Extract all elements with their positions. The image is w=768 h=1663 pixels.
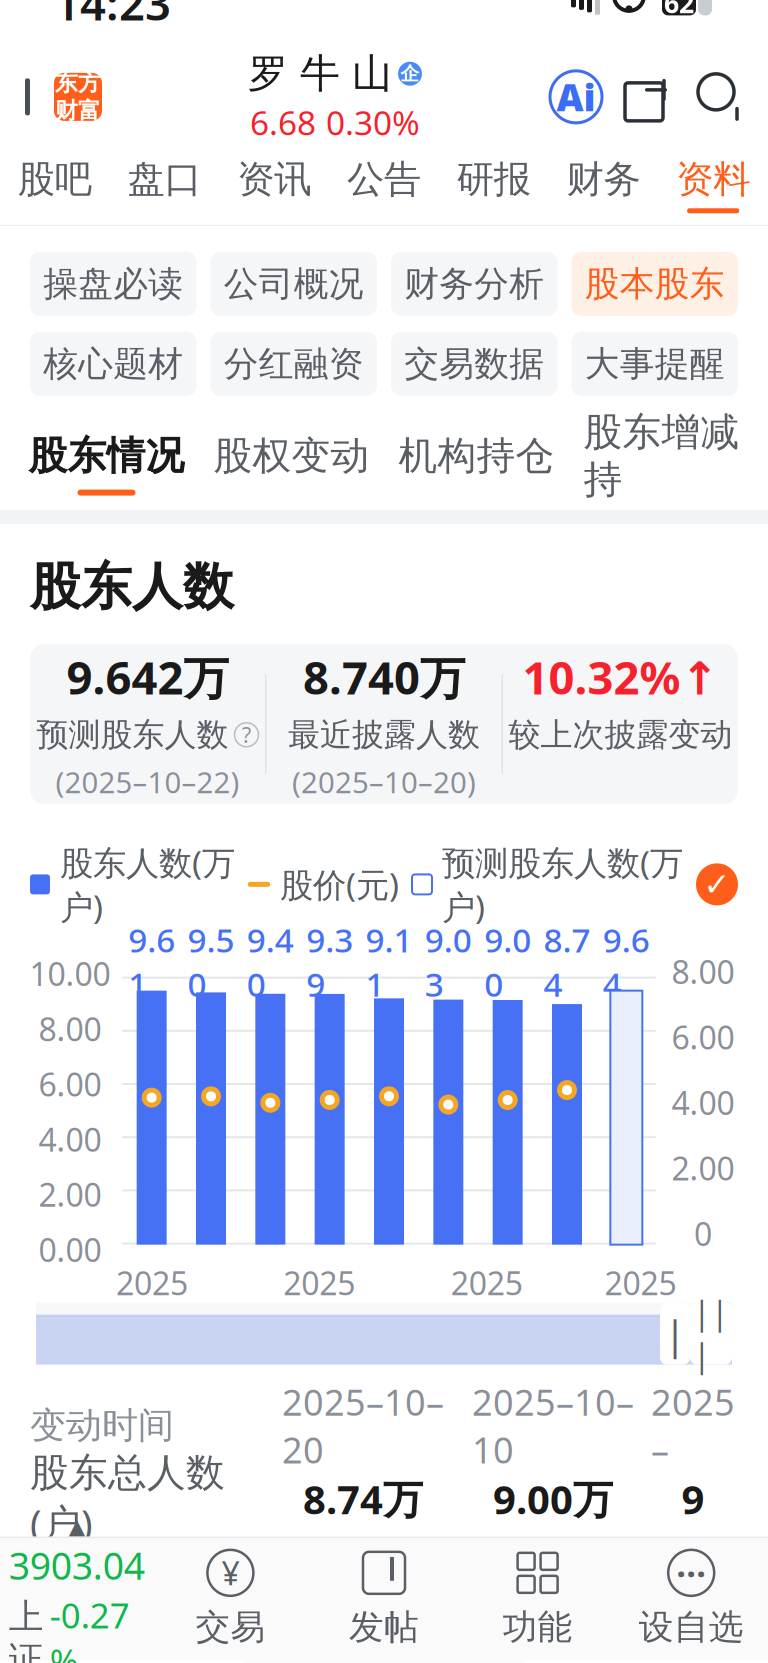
staticText: 10-10	[446, 1308, 528, 1351]
button[interactable]: 研报	[439, 146, 549, 224]
button[interactable]: 股权变动	[199, 422, 384, 506]
button[interactable]: 股吧	[0, 146, 110, 224]
staticText: ···	[676, 1550, 706, 1596]
staticText: 2.00	[671, 1147, 734, 1189]
button[interactable]: 确认	[696, 863, 738, 905]
staticText: 东方	[55, 69, 101, 97]
staticText: 9.03	[425, 917, 472, 1006]
button[interactable]: 核心题材	[30, 332, 196, 396]
staticText: 2.00	[38, 1173, 101, 1216]
staticText: 罗 牛 山	[248, 49, 392, 98]
button[interactable]: 返回	[0, 52, 120, 142]
button[interactable]: 大事提醒	[571, 332, 738, 396]
button[interactable]: 调整区间	[660, 1303, 732, 1365]
button[interactable]: 资料	[658, 146, 768, 224]
staticText: 9.642万	[66, 647, 228, 707]
staticText: 2025	[283, 1262, 355, 1304]
staticText: 9.39	[306, 917, 353, 1006]
staticText: 财富	[55, 97, 101, 125]
staticText: 预测股东人数(万户)	[442, 840, 683, 929]
staticText: (2025–10–22)	[55, 762, 239, 801]
button[interactable]: 财务分析	[391, 252, 557, 316]
staticText: 交易	[195, 1606, 265, 1648]
button[interactable]: 股东增减持	[569, 422, 754, 506]
staticText: 10.00	[29, 952, 110, 995]
button[interactable]: 机构持仓	[384, 422, 569, 506]
staticText: 9.00万	[493, 1472, 613, 1525]
staticText: 9.64	[603, 917, 650, 1006]
staticText: 6.68	[250, 100, 316, 145]
staticText: 股东增减持	[583, 408, 739, 503]
staticText: 10-22	[599, 1308, 681, 1351]
staticText: 3903.04	[9, 1540, 145, 1590]
staticText: 交易数据	[404, 343, 544, 385]
button[interactable]: 交易数据	[391, 332, 557, 396]
button[interactable]: ···	[614, 1539, 768, 1659]
staticText: 研报	[457, 156, 531, 202]
staticText: 0.30%	[326, 100, 420, 145]
staticText: 2025–	[651, 1378, 735, 1473]
staticText: 资讯	[237, 156, 311, 202]
staticText: 公告	[347, 156, 421, 202]
staticText: (2025–10–20)	[292, 762, 476, 801]
button[interactable]: 搜索	[696, 72, 746, 122]
staticText: 2025–10–20	[282, 1378, 444, 1473]
staticText: 9.40	[247, 917, 294, 1006]
staticText: Ai	[556, 72, 595, 122]
staticText: 9.50	[187, 917, 234, 1006]
button[interactable]: 股东情况	[14, 422, 199, 506]
staticText: 14:23	[54, 0, 171, 33]
staticText: 股东总人数(户)	[30, 1449, 225, 1548]
staticText: ?	[242, 721, 251, 749]
staticText: 2025	[451, 1262, 523, 1304]
staticText: 股东人数(万户)	[60, 840, 235, 929]
staticText: 功能	[503, 1606, 573, 1648]
button[interactable]: 功能	[461, 1539, 614, 1659]
staticText: 0	[694, 1212, 712, 1255]
staticText: 预	[685, 1302, 708, 1330]
button[interactable]: AI 助手	[550, 71, 602, 123]
staticText: 9.00	[484, 917, 531, 1006]
button[interactable]: ¥	[154, 1539, 307, 1659]
staticText: 62	[664, 0, 694, 21]
staticText: 0.00	[38, 1228, 101, 1271]
staticText: |	[664, 1307, 686, 1360]
staticText: 08-08	[111, 1308, 193, 1351]
staticText: 上证	[9, 1595, 44, 1663]
staticText: 资料	[676, 156, 750, 202]
button[interactable]: 公告	[329, 146, 439, 224]
button[interactable]: 公司概况	[210, 252, 377, 316]
staticText: 10.32%↑	[522, 647, 718, 707]
staticText: 大事提醒	[585, 343, 725, 385]
staticText: 股权变动	[213, 432, 369, 480]
button[interactable]: 股本股东	[571, 252, 738, 316]
staticText: 盘口	[128, 156, 202, 202]
staticText: 2025	[116, 1262, 188, 1304]
button[interactable]: 财务	[549, 146, 658, 224]
staticText: ✓	[703, 866, 730, 902]
staticText: 分红融资	[224, 343, 364, 385]
button[interactable]: 发帖	[307, 1539, 461, 1659]
staticText: 2025–10–10	[472, 1378, 634, 1473]
staticText: 8.00	[671, 950, 734, 993]
staticText: 预测股东人数	[36, 715, 228, 754]
button[interactable]: 分享	[624, 72, 674, 122]
staticText: 股价(元)	[280, 862, 399, 906]
staticText: ▲	[69, 1514, 85, 1538]
staticText: 8.00	[38, 1008, 101, 1050]
staticText: 6.00	[38, 1063, 101, 1105]
button[interactable]: 资讯	[219, 146, 329, 224]
staticText: 操盘必读	[43, 263, 183, 305]
button[interactable]: 盘口	[110, 146, 219, 224]
staticText: 最近披露人数	[288, 715, 480, 754]
staticText: 财务	[566, 156, 640, 202]
button[interactable]: 操盘必读	[30, 252, 196, 316]
staticText: 股东人数	[30, 556, 234, 618]
staticText: 财务分析	[404, 263, 544, 305]
staticText: |||	[693, 1291, 729, 1376]
staticText: 股本股东	[585, 263, 725, 305]
button[interactable]: 分红融资	[210, 332, 377, 396]
button[interactable]: ▲	[0, 1539, 154, 1659]
staticText: 设自选	[639, 1606, 744, 1648]
staticText: 公司概况	[224, 263, 364, 305]
